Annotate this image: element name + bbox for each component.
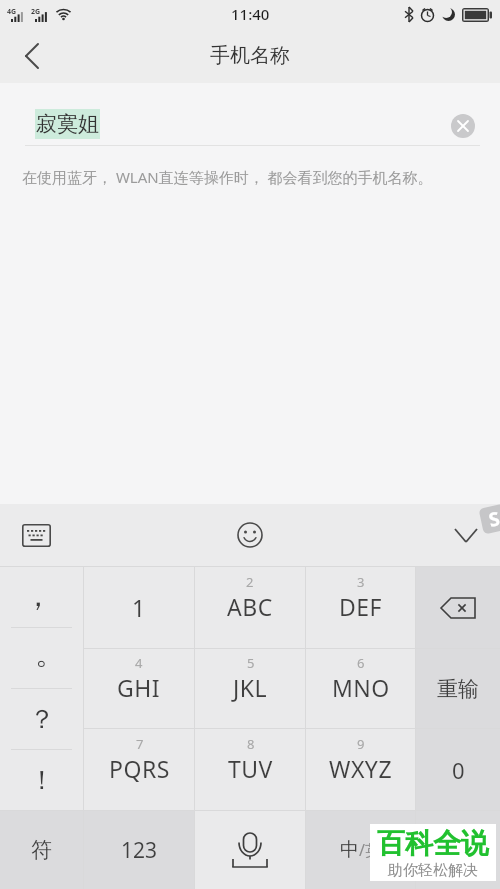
button[interactable]: 7 xyxy=(84,729,194,810)
button[interactable]: 3 xyxy=(306,567,415,648)
staticText: 1 xyxy=(132,592,146,623)
button[interactable]: 寂寞姐 xyxy=(0,83,500,145)
staticText: S xyxy=(486,505,500,533)
button[interactable] xyxy=(195,811,305,889)
button[interactable]: 8 xyxy=(195,729,305,810)
staticText: 寂寞姐 xyxy=(36,111,99,137)
staticText: 符 xyxy=(31,837,52,863)
staticText: 助你轻松解决 xyxy=(388,861,478,880)
staticText: 123 xyxy=(121,836,158,865)
button[interactable]: 重输 xyxy=(416,649,500,728)
button[interactable]: 符 xyxy=(0,811,83,889)
staticText: 6 xyxy=(357,654,365,672)
button[interactable]: 5 xyxy=(195,649,305,728)
staticText: ， xyxy=(23,577,53,615)
staticText: 11:40 xyxy=(231,4,270,24)
staticText: ABC xyxy=(227,591,273,622)
staticText: PQRS xyxy=(109,753,170,784)
staticText: DEF xyxy=(339,591,383,622)
staticText: 3 xyxy=(357,573,365,591)
staticText: 4 xyxy=(135,654,143,672)
button[interactable] xyxy=(451,114,475,138)
staticText: JKL xyxy=(233,672,268,703)
button[interactable] xyxy=(16,515,56,555)
button[interactable] xyxy=(416,567,500,648)
button[interactable]: 中 xyxy=(306,811,415,889)
staticText: 中 xyxy=(340,838,359,862)
staticText: 4G xyxy=(7,7,17,17)
staticText: MNO xyxy=(332,672,390,703)
staticText: 0 xyxy=(452,755,465,785)
button[interactable]: 0 xyxy=(416,729,500,810)
button[interactable]: 123 xyxy=(84,811,194,889)
staticText: ？ xyxy=(29,703,55,736)
staticText: 9 xyxy=(357,735,365,753)
staticText: 2 xyxy=(246,573,254,591)
button[interactable]: 9 xyxy=(306,729,415,810)
button[interactable]: 。 xyxy=(0,628,83,688)
button[interactable] xyxy=(230,515,270,555)
button[interactable] xyxy=(446,515,486,555)
staticText: 5 xyxy=(247,654,255,672)
button[interactable]: 6 xyxy=(306,649,415,728)
staticText: 在使用蓝牙， WLAN直连等操作时， 都会看到您的手机名称。 xyxy=(22,167,433,187)
staticText: 2G xyxy=(31,7,41,17)
staticText: WXYZ xyxy=(329,753,393,784)
staticText: GHI xyxy=(117,672,161,703)
staticText: 手机名称 xyxy=(210,43,290,68)
button[interactable]: ， xyxy=(0,567,83,627)
staticText: 7 xyxy=(136,735,144,753)
staticText: 重输 xyxy=(437,676,479,702)
staticText: 8 xyxy=(247,735,255,753)
button[interactable]: 4 xyxy=(84,649,194,728)
button[interactable] xyxy=(416,811,500,889)
button[interactable] xyxy=(14,38,50,74)
staticText: /英 xyxy=(359,839,381,861)
button[interactable]: ？ xyxy=(0,689,83,749)
button[interactable]: 1 xyxy=(84,567,194,648)
staticText: 百科全说 xyxy=(377,826,489,861)
staticText: ！ xyxy=(29,764,55,797)
staticText: 。 xyxy=(35,635,65,673)
button[interactable]: 2 xyxy=(195,567,305,648)
staticText: TUV xyxy=(228,753,273,784)
button[interactable]: ！ xyxy=(0,750,83,810)
